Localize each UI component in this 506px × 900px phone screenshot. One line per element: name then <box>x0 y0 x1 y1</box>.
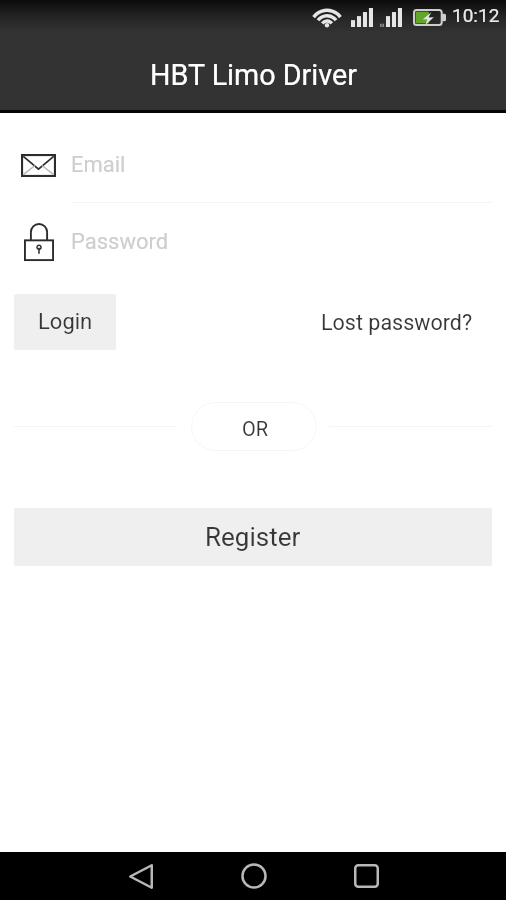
staticText: OR <box>242 417 269 440</box>
button[interactable]: Home <box>211 852 296 900</box>
button[interactable]: Lost password? <box>321 300 473 345</box>
staticText: Password <box>71 229 169 255</box>
staticText: Email <box>71 152 126 175</box>
staticText: HBT Limo Driver <box>150 58 357 92</box>
staticText: Login <box>38 309 93 335</box>
button[interactable]: Back <box>98 852 183 900</box>
button[interactable]: Recents <box>324 852 409 900</box>
staticText: Lost password? <box>321 310 473 335</box>
button[interactable]: Register <box>14 508 492 566</box>
staticText: Register <box>205 522 301 552</box>
button[interactable]: Login <box>14 294 116 350</box>
button[interactable]: OR <box>191 402 317 451</box>
staticText: 10:12 <box>452 4 500 26</box>
